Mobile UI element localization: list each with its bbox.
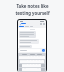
button[interactable] (22, 54, 27, 55)
button[interactable]: Back (19, 23, 21, 25)
button[interactable] (19, 26, 24, 27)
staticText: Take notes like (16, 3, 49, 9)
button[interactable] (20, 46, 31, 47)
button[interactable] (30, 54, 35, 55)
button[interactable] (19, 49, 41, 52)
button[interactable] (37, 54, 42, 55)
button[interactable]: Send (42, 49, 45, 52)
button[interactable] (20, 32, 35, 37)
staticText: texting yourself (15, 10, 50, 16)
button[interactable] (20, 40, 38, 43)
